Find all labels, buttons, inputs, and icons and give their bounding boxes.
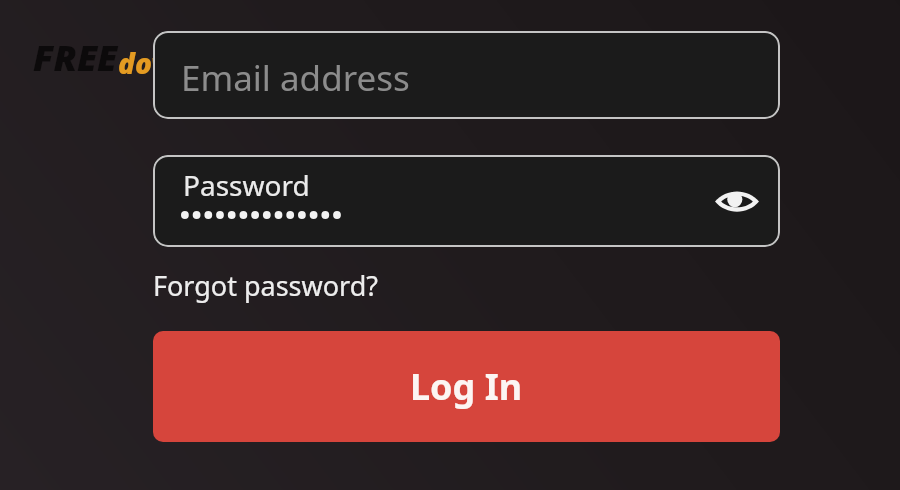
button[interactable]: Log In [153,331,780,442]
staticText: Forgot password? [153,267,379,304]
button[interactable]: Email address [153,31,780,119]
button[interactable]: Show password [708,172,766,230]
staticText: Password [183,166,310,204]
staticText: .top [252,51,298,82]
staticText: Email address [181,54,410,102]
button[interactable]: Password [153,155,780,247]
staticText: FREE [33,33,118,82]
staticText: download [118,44,252,82]
staticText: Log In [410,362,523,411]
button[interactable]: Forgot password? [151,264,381,307]
